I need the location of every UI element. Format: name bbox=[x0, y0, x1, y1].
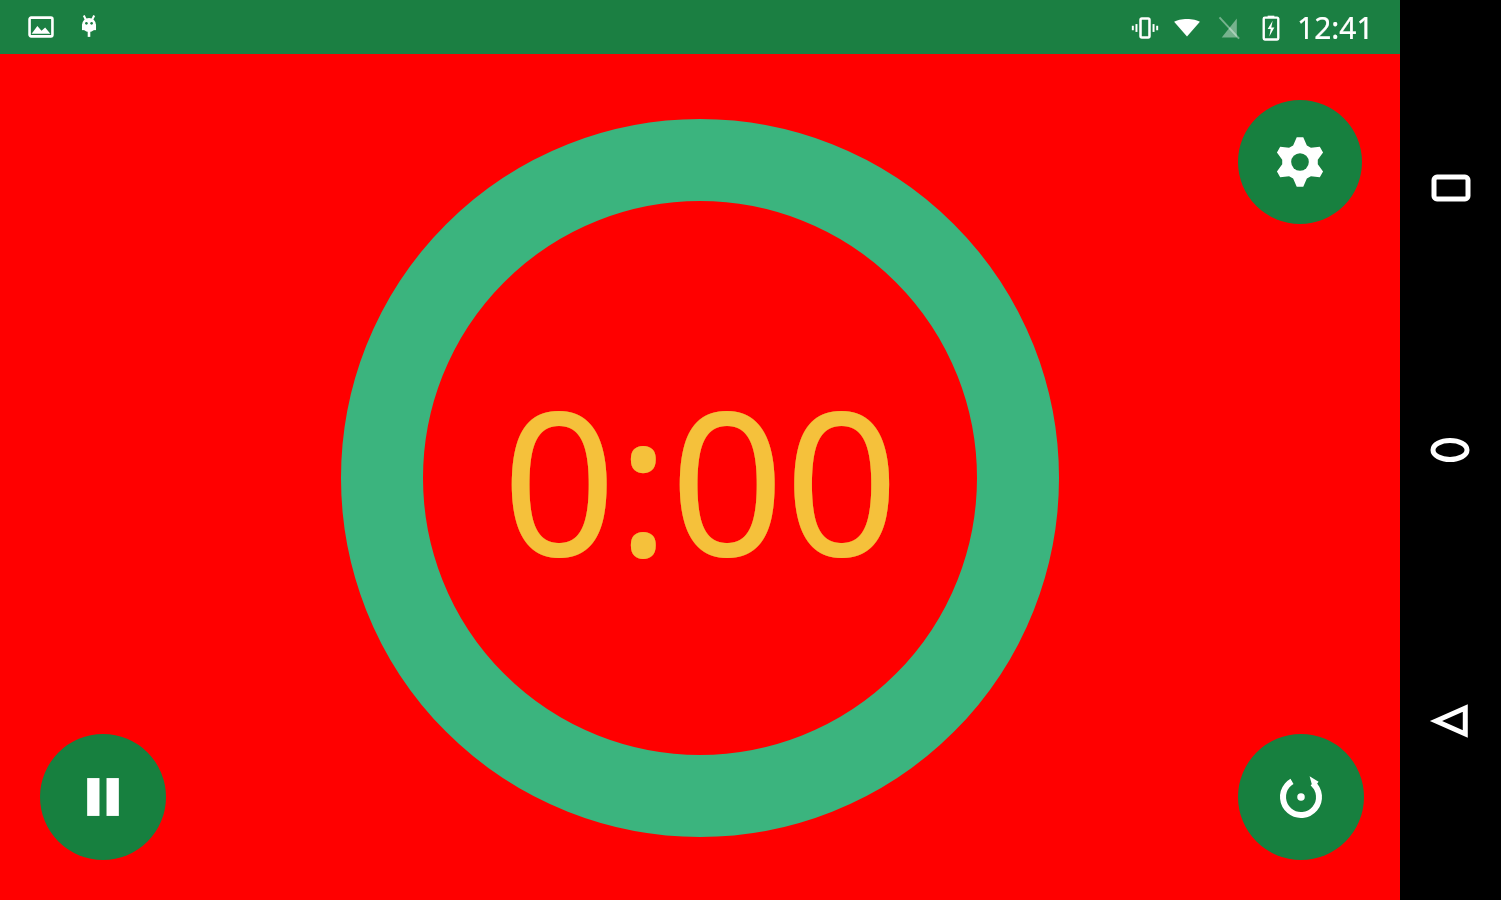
staticText: 0:00 bbox=[502, 342, 899, 614]
button[interactable]: Recents bbox=[1415, 152, 1487, 224]
button[interactable]: Settings bbox=[1238, 100, 1362, 224]
button[interactable]: Home bbox=[1414, 414, 1486, 486]
staticText: 12:41 bbox=[1297, 7, 1374, 48]
button[interactable]: Reset bbox=[1238, 734, 1364, 860]
button[interactable]: Pause bbox=[40, 734, 166, 860]
button[interactable]: Back bbox=[1415, 685, 1487, 757]
